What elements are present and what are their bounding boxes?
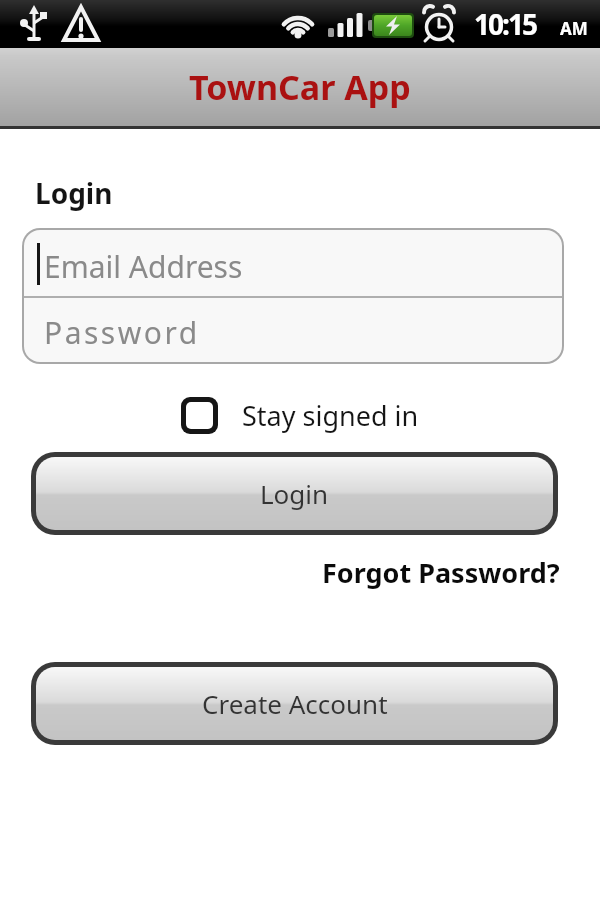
staticText: Login — [260, 476, 329, 511]
button[interactable]: Email Address — [24, 230, 562, 296]
button[interactable] — [181, 397, 218, 434]
staticText: Login — [35, 174, 113, 212]
staticText: Stay signed in — [242, 397, 419, 434]
staticText: 10:15 — [474, 5, 536, 43]
button[interactable]: Login — [31, 452, 558, 535]
staticText: Password — [44, 312, 200, 353]
button[interactable]: Create Account — [31, 662, 558, 745]
button[interactable]: Forgot Password? — [322, 554, 560, 591]
staticText: Email Address — [44, 246, 243, 287]
button[interactable]: Password — [24, 298, 562, 362]
staticText: TownCar App — [189, 64, 411, 110]
staticText: AM — [560, 17, 588, 40]
staticText: Forgot Password? — [322, 554, 560, 591]
staticText: Create Account — [202, 686, 388, 721]
